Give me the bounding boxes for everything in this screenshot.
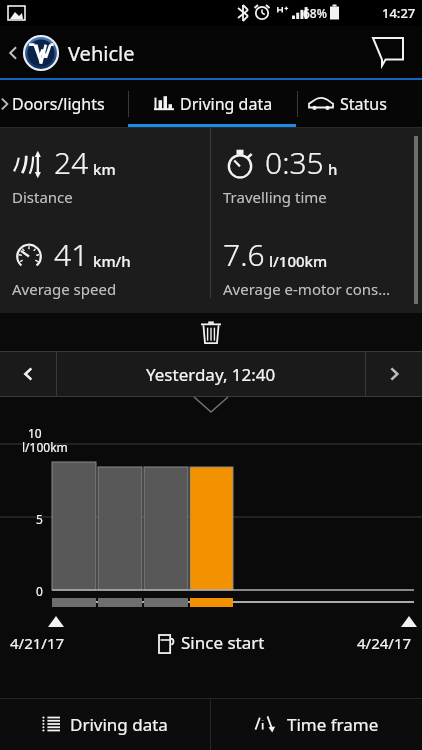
staticText: Since start — [181, 631, 265, 654]
staticText: h — [328, 159, 338, 179]
staticText: Distance — [12, 187, 73, 207]
staticText: Time frame — [287, 713, 379, 736]
button[interactable]: Status — [298, 80, 422, 128]
button[interactable]: Since start — [157, 631, 265, 654]
staticText: Average speed — [12, 279, 117, 299]
staticText: Driving data — [70, 713, 168, 736]
button[interactable]: Previous — [0, 351, 56, 397]
staticText: 0 — [36, 583, 43, 599]
staticText: Driving data — [180, 93, 273, 115]
staticText: 5 — [36, 511, 43, 527]
staticText: l/100km — [22, 439, 68, 455]
staticText: Yesterday, 12:40 — [146, 363, 276, 386]
button[interactable]: Messages — [368, 33, 408, 73]
staticText: 41 — [54, 234, 89, 275]
button[interactable]: Driving data — [0, 698, 210, 750]
button[interactable]: Next — [366, 351, 422, 397]
staticText: 4/21/17 — [10, 633, 65, 653]
button[interactable]: 0:35 — [211, 128, 422, 220]
staticText: 24 — [54, 142, 89, 183]
button[interactable]: Yesterday, 12:40 — [57, 351, 365, 397]
staticText: 14:27 — [382, 4, 416, 22]
button[interactable]: Delete — [189, 313, 233, 351]
button[interactable]: Driving data — [129, 80, 297, 128]
staticText: km/h — [93, 251, 131, 271]
staticText: 4/24/17 — [357, 633, 412, 653]
staticText: Average e-motor cons… — [223, 279, 391, 299]
staticText: Vehicle — [68, 40, 135, 67]
staticText: km — [93, 159, 116, 179]
staticText: l/100km — [269, 251, 328, 271]
staticText: 10 — [28, 425, 42, 441]
button[interactable]: Vehicle — [0, 30, 145, 76]
staticText: 0:35 — [265, 142, 324, 183]
staticText: Travelling time — [223, 187, 327, 207]
staticText: Doors/lights — [12, 93, 105, 115]
staticText: Status — [340, 93, 387, 115]
button[interactable]: Doors/lights — [0, 80, 128, 128]
button[interactable]: 7.6 — [211, 220, 422, 313]
button[interactable]: Time frame — [211, 698, 422, 750]
button[interactable]: 41 — [0, 220, 210, 313]
staticText: 68% — [303, 5, 327, 21]
staticText: 7.6 — [223, 234, 265, 275]
button[interactable]: 24 — [0, 128, 210, 220]
